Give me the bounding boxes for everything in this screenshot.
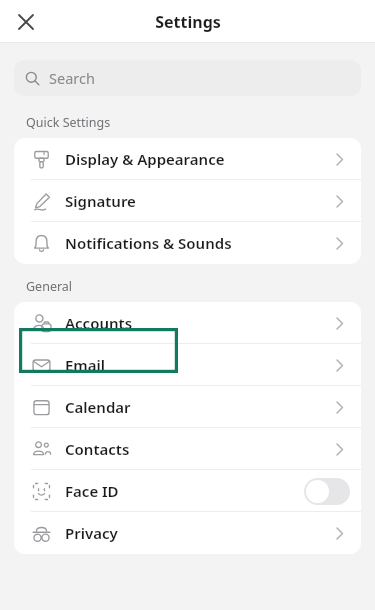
staticText: Notifications & Sounds — [65, 233, 232, 253]
staticText: Email — [65, 355, 106, 375]
staticText: Accounts — [65, 313, 133, 333]
staticText: Face ID — [65, 481, 119, 501]
button[interactable]: Close — [6, 2, 46, 42]
staticText: Contacts — [65, 439, 130, 459]
button[interactable]: Search — [14, 60, 361, 96]
button[interactable]: Notifications & Sounds — [14, 222, 361, 264]
staticText: Settings — [155, 11, 221, 33]
button[interactable]: Signature — [14, 180, 361, 222]
button[interactable]: Face ID — [14, 470, 361, 512]
button[interactable]: Display & Appearance — [14, 138, 361, 180]
staticText: Display & Appearance — [65, 149, 225, 169]
staticText: Calendar — [65, 397, 131, 417]
staticText: Signature — [65, 191, 136, 211]
button[interactable]: Calendar — [14, 386, 361, 428]
button[interactable]: Accounts — [14, 302, 361, 344]
staticText: Search — [49, 68, 95, 88]
button[interactable]: Toggle Face ID — [304, 478, 350, 505]
button[interactable]: Privacy — [14, 512, 361, 554]
staticText: Privacy — [65, 523, 118, 543]
button[interactable]: Contacts — [14, 428, 361, 470]
staticText: General — [26, 278, 73, 295]
button[interactable]: Email — [14, 344, 361, 386]
staticText: Quick Settings — [26, 114, 111, 131]
